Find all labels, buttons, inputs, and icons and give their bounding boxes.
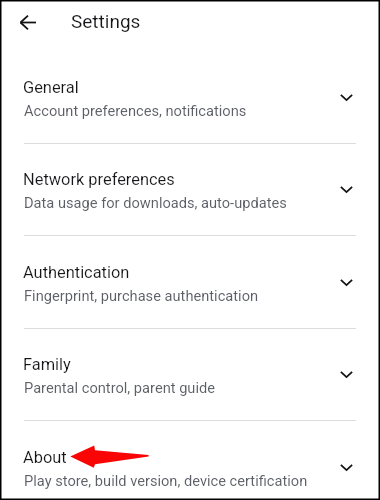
staticText: Authentication (23, 263, 130, 282)
staticText: Network preferences (23, 170, 175, 189)
staticText: Settings (71, 10, 141, 32)
staticText: Family (23, 355, 71, 374)
button[interactable]: Expand Network preferences (340, 186, 353, 193)
button[interactable]: Expand General (340, 94, 353, 101)
staticText: General (23, 78, 79, 97)
staticText: Play store, build version, device certif… (24, 472, 308, 489)
staticText: Data usage for downloads, auto-updates (24, 194, 287, 211)
staticText: About (23, 448, 67, 467)
staticText: Parental control, parent guide (24, 379, 216, 396)
button[interactable]: Expand Authentication (340, 279, 353, 286)
staticText: Fingerprint, purchase authentication (24, 287, 259, 304)
button[interactable]: General (0, 57, 380, 149)
button[interactable]: Expand Family (340, 371, 353, 378)
button[interactable]: Family (0, 334, 380, 426)
button[interactable]: Expand About (340, 464, 353, 471)
button[interactable]: About (0, 427, 380, 500)
staticText: Account preferences, notifications (24, 102, 247, 119)
button[interactable]: Network preferences (0, 149, 380, 241)
button[interactable]: Back (14, 8, 42, 36)
button[interactable]: Authentication (0, 242, 380, 334)
